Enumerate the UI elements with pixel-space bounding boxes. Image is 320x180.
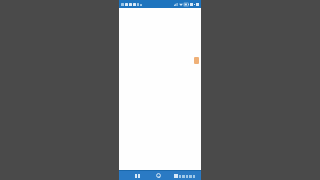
- button[interactable]: Navigation item: [169, 171, 199, 180]
- button[interactable]: Navigation item: [148, 171, 169, 180]
- button[interactable]: Navigation item: [127, 171, 148, 180]
- button[interactable]: Accent marker: [194, 57, 199, 64]
